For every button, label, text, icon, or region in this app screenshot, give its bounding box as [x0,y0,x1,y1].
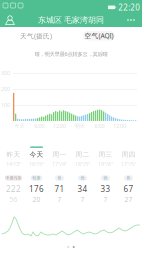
staticText: 176 [29,184,44,194]
staticText: 100 [1,101,10,109]
staticText: 20 [32,195,40,204]
staticText: 今天 [29,150,43,159]
staticText: 良 [126,175,130,180]
staticText: 6:00 [34,122,44,130]
staticText: 12:00 [113,122,126,130]
staticText: 东城区 毛家湾胡同 [38,15,104,25]
button[interactable]: More [123,13,139,27]
staticText: 14°/3° [6,160,21,168]
staticText: 22:20 [118,2,140,13]
staticText: 轻度 [32,175,40,180]
button[interactable]: 今天 [25,146,48,159]
staticText: 19°/6° [98,160,113,168]
staticText: 222 [6,184,21,194]
staticText: 34 [77,184,87,194]
staticText: 优 [80,175,84,180]
staticText: 33 [100,184,110,194]
staticText: 良 [57,175,61,180]
staticText: 7 [103,195,107,204]
staticText: 周二 [75,150,89,159]
staticText: 今天 [14,123,24,129]
staticText: 天气(摄氏) [20,32,52,40]
staticText: 7 [57,195,61,204]
button[interactable]: 周三 [94,146,117,159]
staticText: 空气(AQI) [84,31,113,40]
button[interactable]: 空气(AQI) [83,31,115,40]
staticText: 56 [9,195,17,204]
button[interactable]: 昨天 [2,146,25,159]
staticText: 中度污染 [5,175,21,180]
staticText: 12:00 [53,122,66,130]
staticText: 27 [124,195,132,204]
button[interactable]: 天气(摄氏) [18,31,54,41]
staticText: 200 [1,85,10,93]
staticText: 71 [54,184,64,194]
staticText: 17°/5° [121,160,136,168]
staticText: 17°/4° [52,160,67,168]
button[interactable]: 周一 [48,146,71,159]
staticText: 周一 [52,150,66,159]
staticText: 周四 [121,150,135,159]
staticText: 6:00 [94,122,104,130]
staticText: 昨天 [6,150,20,159]
button[interactable]: 周四 [117,146,140,159]
staticText: 晴，明天早晨6点转多云，其后晴 [34,50,107,58]
staticText: 16°/5° [29,160,44,168]
staticText: 明天 [74,123,84,129]
staticText: 7 [80,195,84,204]
staticText: 300 [1,69,10,77]
button[interactable]: 周二 [71,146,94,159]
staticText: 优 [103,175,107,180]
staticText: 18°/5° [75,160,90,168]
staticText: 周三 [98,150,112,159]
staticText: 67 [123,184,133,194]
button[interactable]: Location [3,13,17,27]
